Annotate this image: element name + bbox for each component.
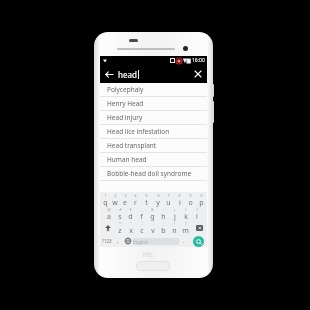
- staticText: -: [163, 207, 165, 212]
- button[interactable]: *: [115, 221, 125, 235]
- staticText: :: [153, 221, 154, 226]
- staticText: ): [196, 207, 198, 212]
- staticText: 0: [200, 193, 203, 198]
- staticText: n: [172, 226, 177, 235]
- button[interactable]: Human head: [100, 153, 207, 167]
- button[interactable]: +: [169, 207, 180, 221]
- button[interactable]: Polycephaly: [100, 83, 207, 97]
- staticText: h: [161, 212, 166, 221]
- button[interactable]: 4: [130, 193, 141, 207]
- staticText: d: [128, 212, 133, 221]
- button[interactable]: &: [147, 207, 158, 221]
- staticText: ▼▆ 16:00: [183, 57, 205, 64]
- button[interactable]: 7: [163, 193, 174, 207]
- staticText: r: [134, 198, 137, 207]
- button[interactable]: 2: [110, 193, 120, 207]
- button[interactable]: ?123: [100, 235, 113, 247]
- button[interactable]: Navigate up: [100, 65, 118, 83]
- button[interactable]: Henry Head: [100, 97, 207, 111]
- staticText: Head lice infestation: [107, 127, 170, 136]
- button[interactable]: :: [147, 221, 158, 235]
- staticText: u: [166, 198, 171, 207]
- button[interactable]: 6: [152, 193, 163, 207]
- staticText: 7: [167, 193, 170, 198]
- staticText: !: [174, 221, 175, 226]
- button[interactable]: ;: [158, 221, 169, 235]
- staticText: ,: [117, 237, 119, 245]
- staticText: .: [183, 237, 185, 245]
- staticText: 3: [124, 193, 127, 198]
- staticText: 1: [104, 193, 107, 198]
- staticText: Head transplant: [107, 141, 157, 150]
- button[interactable]: Comma: [113, 235, 123, 247]
- staticText: _: [141, 207, 143, 212]
- staticText: @: [107, 207, 111, 212]
- button[interactable]: Clear query: [189, 65, 207, 83]
- staticText: e: [123, 198, 127, 207]
- staticText: p: [199, 198, 204, 207]
- staticText: +: [173, 207, 176, 212]
- button[interactable]: ": [125, 221, 136, 235]
- button[interactable]: ): [191, 207, 202, 221]
- button[interactable]: 8: [174, 193, 185, 207]
- button[interactable]: Period: [179, 235, 189, 247]
- staticText: #: [119, 207, 122, 212]
- staticText: f: [140, 212, 143, 221]
- button[interactable]: ?: [180, 221, 191, 235]
- button[interactable]: Search: [193, 236, 204, 247]
- staticText: $: [129, 207, 132, 212]
- staticText: c: [140, 226, 144, 235]
- staticText: &: [151, 207, 154, 212]
- staticText: o: [188, 198, 193, 207]
- button[interactable]: _: [136, 207, 147, 221]
- button[interactable]: ': [136, 221, 147, 235]
- staticText: z: [118, 226, 122, 235]
- staticText: g: [150, 212, 155, 221]
- button[interactable]: English: [133, 238, 179, 245]
- button[interactable]: 9: [185, 193, 196, 207]
- staticText: i: [179, 198, 181, 207]
- button[interactable]: Delete: [191, 221, 207, 235]
- button[interactable]: (: [180, 207, 191, 221]
- staticText: s: [118, 212, 122, 221]
- staticText: t: [145, 198, 148, 207]
- staticText: m: [182, 226, 189, 235]
- staticText: 9: [189, 193, 192, 198]
- button[interactable]: Change language: [123, 235, 133, 247]
- staticText: English: [133, 239, 179, 245]
- staticText: 5: [145, 193, 148, 198]
- button[interactable]: Head injury: [100, 111, 207, 125]
- button[interactable]: Shift: [100, 221, 115, 235]
- staticText: Polycephaly: [107, 85, 144, 94]
- button[interactable]: Bobble-head doll syndrome: [100, 167, 207, 181]
- button[interactable]: 3: [120, 193, 130, 207]
- button[interactable]: 0: [196, 193, 207, 207]
- staticText: Head injury: [107, 113, 143, 122]
- staticText: *: [119, 221, 121, 226]
- staticText: l: [196, 212, 198, 221]
- button[interactable]: -: [158, 207, 169, 221]
- button[interactable]: Head lice infestation: [100, 125, 207, 139]
- button[interactable]: #: [114, 207, 125, 221]
- button[interactable]: 5: [141, 193, 152, 207]
- button[interactable]: @: [104, 207, 114, 221]
- button[interactable]: head: [118, 69, 189, 80]
- staticText: k: [184, 212, 188, 221]
- button[interactable]: 1: [100, 193, 110, 207]
- button[interactable]: Head transplant: [100, 139, 207, 153]
- staticText: 4: [134, 193, 137, 198]
- staticText: (: [185, 207, 187, 212]
- button[interactable]: !: [169, 221, 180, 235]
- staticText: q: [103, 198, 108, 207]
- staticText: j: [174, 212, 176, 221]
- staticText: Henry Head: [107, 99, 144, 108]
- staticText: 8: [178, 193, 181, 198]
- staticText: y: [156, 198, 160, 207]
- button[interactable]: $: [125, 207, 136, 221]
- staticText: ?: [185, 221, 187, 226]
- staticText: w: [112, 198, 118, 207]
- staticText: ': [142, 221, 143, 226]
- staticText: 6: [157, 193, 160, 198]
- staticText: htc: [143, 250, 154, 260]
- staticText: Human head: [107, 155, 147, 164]
